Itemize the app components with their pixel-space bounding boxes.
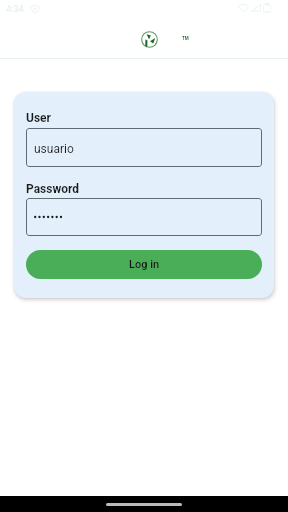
button[interactable]: Home gesture — [106, 503, 182, 506]
staticText: usuario — [34, 142, 74, 156]
staticText: 4:34 — [6, 4, 24, 15]
button[interactable]: Log in — [26, 250, 262, 279]
staticText: User — [26, 111, 51, 125]
button[interactable]: Password — [26, 198, 262, 236]
button[interactable]: Home — [137, 27, 162, 52]
button[interactable]: User name — [26, 128, 262, 167]
staticText: Log in — [129, 258, 160, 271]
staticText: Password — [26, 182, 80, 196]
staticText: TM — [182, 36, 189, 41]
